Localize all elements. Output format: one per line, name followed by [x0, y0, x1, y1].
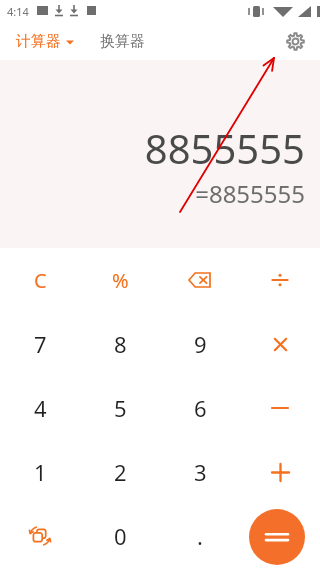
- button[interactable]: 除: [240, 248, 320, 312]
- button[interactable]: 设置: [278, 24, 312, 58]
- button[interactable]: 2: [80, 440, 160, 504]
- button[interactable]: 6: [160, 376, 240, 440]
- button[interactable]: 4: [0, 376, 80, 440]
- button[interactable]: 换算器: [98, 28, 147, 55]
- button[interactable]: 8: [80, 312, 160, 376]
- button[interactable]: 等于: [249, 509, 305, 565]
- staticText: 2: [114, 457, 127, 487]
- staticText: 7: [34, 329, 47, 359]
- button[interactable]: 删除: [160, 248, 240, 312]
- button[interactable]: 计算器: [14, 28, 76, 55]
- staticText: %: [112, 267, 129, 294]
- button[interactable]: 5: [80, 376, 160, 440]
- button[interactable]: 1: [0, 440, 80, 504]
- button[interactable]: 7: [0, 312, 80, 376]
- staticText: 8855555: [144, 121, 305, 175]
- button[interactable]: 减: [240, 376, 320, 440]
- staticText: 6: [194, 393, 207, 423]
- staticText: .: [197, 521, 203, 551]
- button[interactable]: C: [0, 248, 80, 312]
- button[interactable]: 换算: [0, 504, 80, 568]
- button[interactable]: %: [80, 248, 160, 312]
- staticText: 5: [114, 393, 127, 423]
- staticText: 4: [34, 393, 47, 423]
- staticText: 3: [194, 457, 207, 487]
- button[interactable]: 加: [240, 440, 320, 504]
- staticText: =8855555: [195, 177, 305, 210]
- button[interactable]: 0: [80, 504, 160, 568]
- button[interactable]: 3: [160, 440, 240, 504]
- staticText: 9: [194, 329, 207, 359]
- button[interactable]: .: [160, 504, 240, 568]
- staticText: 4:14: [7, 4, 29, 19]
- staticText: 计算器: [16, 32, 61, 51]
- staticText: 8: [114, 329, 127, 359]
- button[interactable]: 9: [160, 312, 240, 376]
- staticText: 1: [34, 457, 47, 487]
- staticText: 0: [114, 521, 127, 551]
- staticText: C: [34, 267, 47, 294]
- button[interactable]: 乘: [240, 312, 320, 376]
